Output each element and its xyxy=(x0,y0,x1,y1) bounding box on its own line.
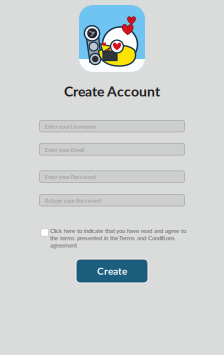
button[interactable]: Create xyxy=(76,259,148,283)
staticText: Enter your Username xyxy=(44,122,96,130)
staticText: Retype your Password xyxy=(44,196,100,204)
staticText: Enter your Password xyxy=(44,173,95,180)
button[interactable]: Enter your Email xyxy=(39,144,184,155)
button[interactable]: Enter your Username xyxy=(39,120,184,132)
staticText: Enter your Email xyxy=(44,146,83,153)
button[interactable]: Enter your Password xyxy=(39,171,184,182)
staticText: Create xyxy=(97,265,127,277)
button[interactable]: Click here to indicate that you have rea… xyxy=(41,227,189,249)
button[interactable]: Retype your Password xyxy=(39,195,184,206)
staticText: Create Account xyxy=(64,83,160,99)
staticText: Click here to indicate that you have rea… xyxy=(50,227,186,249)
